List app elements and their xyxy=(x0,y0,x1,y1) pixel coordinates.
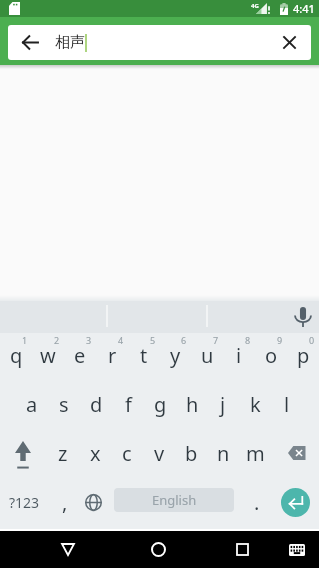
button[interactable] xyxy=(46,531,90,568)
staticText: 8 xyxy=(245,334,251,346)
button[interactable]: c xyxy=(111,431,143,475)
button[interactable]: t xyxy=(128,333,160,377)
button[interactable]: f xyxy=(112,382,144,426)
staticText: q xyxy=(10,342,23,369)
staticText: l xyxy=(284,391,290,418)
button[interactable]: s xyxy=(48,382,80,426)
staticText: j xyxy=(220,391,226,418)
staticText: e xyxy=(74,342,86,369)
staticText: 6 xyxy=(181,334,187,346)
button[interactable]: w xyxy=(32,333,64,377)
staticText: i xyxy=(236,342,242,369)
button[interactable]: k xyxy=(239,382,271,426)
button[interactable] xyxy=(6,431,40,475)
staticText: t xyxy=(140,342,148,369)
staticText: 0 xyxy=(309,334,315,346)
button[interactable]: English xyxy=(114,488,234,512)
button[interactable] xyxy=(267,25,311,60)
staticText: v xyxy=(154,440,165,467)
button[interactable] xyxy=(279,431,315,475)
staticText: ?123 xyxy=(9,493,40,512)
staticText: p xyxy=(297,342,310,369)
staticText: 9 xyxy=(277,334,283,346)
staticText: 1 xyxy=(22,334,28,346)
staticText: u xyxy=(201,342,214,369)
staticText: 4G xyxy=(251,2,259,10)
staticText: 3 xyxy=(86,334,92,346)
staticText: s xyxy=(59,391,69,418)
staticText: f xyxy=(125,391,132,418)
button[interactable]: , xyxy=(49,480,81,524)
button[interactable]: e xyxy=(64,333,96,377)
staticText: d xyxy=(90,391,103,418)
staticText: English xyxy=(152,491,197,509)
button[interactable]: ?123 xyxy=(2,480,46,524)
staticText: m xyxy=(246,440,265,467)
staticText: 相声 xyxy=(55,33,85,52)
staticText: h xyxy=(186,391,199,418)
button[interactable] xyxy=(280,531,314,568)
button[interactable]: n xyxy=(207,431,239,475)
button[interactable]: g xyxy=(144,382,176,426)
staticText: x xyxy=(90,440,101,467)
staticText: c xyxy=(122,440,132,467)
staticText: a xyxy=(26,391,38,418)
staticText: g xyxy=(154,391,167,418)
button[interactable]: j xyxy=(207,382,239,426)
staticText: k xyxy=(250,391,261,418)
button[interactable] xyxy=(291,305,315,329)
button[interactable]: o xyxy=(255,333,287,377)
staticText: b xyxy=(185,440,198,467)
button[interactable]: i xyxy=(223,333,255,377)
staticText: o xyxy=(265,342,278,369)
staticText: y xyxy=(170,342,181,369)
button[interactable]: d xyxy=(80,382,112,426)
button[interactable] xyxy=(78,480,108,524)
button[interactable]: p xyxy=(287,333,319,377)
staticText: 4:41 xyxy=(293,1,315,16)
button[interactable]: l xyxy=(271,382,303,426)
staticText: r xyxy=(108,342,117,369)
button[interactable]: y xyxy=(159,333,191,377)
staticText: . xyxy=(254,489,260,516)
button[interactable]: b xyxy=(175,431,207,475)
button[interactable]: q xyxy=(0,333,32,377)
button[interactable]: 相声 xyxy=(55,25,275,60)
staticText: 4 xyxy=(118,334,124,346)
button[interactable]: h xyxy=(176,382,208,426)
button[interactable]: v xyxy=(143,431,175,475)
button[interactable]: a xyxy=(16,382,48,426)
button[interactable] xyxy=(220,531,264,568)
button[interactable] xyxy=(207,301,319,333)
staticText: z xyxy=(58,440,68,467)
button[interactable] xyxy=(281,488,310,517)
button[interactable]: m xyxy=(239,431,271,475)
staticText: 2 xyxy=(54,334,60,346)
staticText: n xyxy=(217,440,230,467)
staticText: , xyxy=(62,489,68,516)
button[interactable] xyxy=(136,531,180,568)
button[interactable]: r xyxy=(96,333,128,377)
staticText: w xyxy=(40,342,56,369)
staticText: 5 xyxy=(150,334,156,346)
button[interactable]: x xyxy=(79,431,111,475)
button[interactable]: u xyxy=(191,333,223,377)
button[interactable]: . xyxy=(241,480,273,524)
button[interactable] xyxy=(8,25,52,60)
button[interactable]: z xyxy=(47,431,79,475)
staticText: 7 xyxy=(213,334,219,346)
